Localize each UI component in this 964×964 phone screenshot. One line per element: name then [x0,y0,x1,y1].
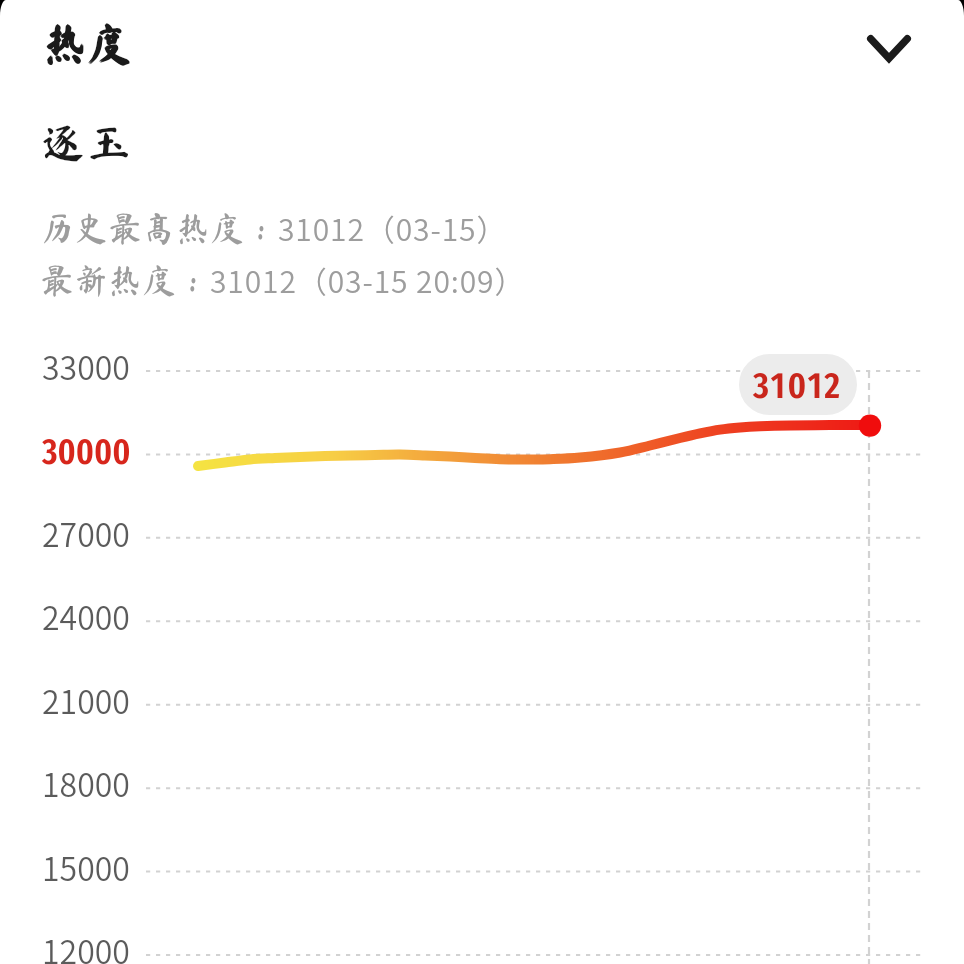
staticText: 12000 [42,927,130,964]
staticText: 逐玉 [41,120,134,164]
staticText: 历史最高热度：31012（03-15） [40,206,508,249]
staticText: 18000 [42,760,130,806]
staticText: 33000 [42,343,130,389]
staticText: 最新热度：31012（03-15 20:09） [40,258,526,301]
staticText: 热度 [44,21,132,65]
button[interactable]: 31012 [739,354,857,415]
staticText: 热度 [42,21,130,65]
staticText: 15000 [42,844,130,890]
staticText: 31012 [753,363,843,407]
button[interactable]: Collapse [844,4,934,93]
staticText: 30000 [42,430,131,473]
staticText: 热度 [43,21,131,65]
staticText: 热度 [43,22,131,66]
staticText: 热度 [43,20,131,64]
staticText: 27000 [42,510,130,556]
staticText: 热度 [44,22,132,66]
staticText: 24000 [42,593,130,639]
staticText: 21000 [42,677,130,723]
